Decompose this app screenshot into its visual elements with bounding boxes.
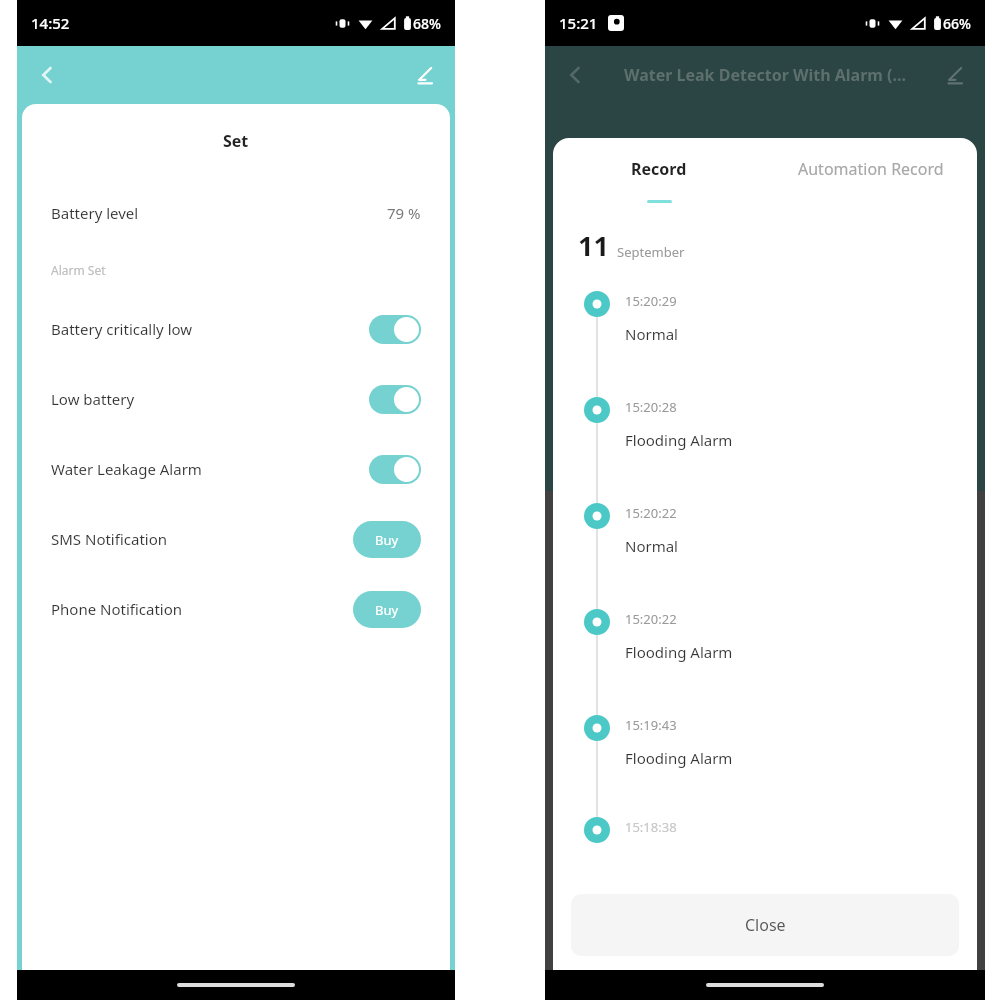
staticText: September (617, 243, 685, 261)
button[interactable]: Battery critically low (22, 294, 450, 364)
staticText: Normal (625, 536, 678, 556)
staticText: 66% (943, 14, 971, 33)
staticText: SMS Notification (51, 529, 168, 549)
staticText: 11 (578, 227, 609, 264)
staticText: 15:20:22 (625, 504, 677, 522)
button[interactable]: Edit (405, 55, 445, 95)
staticText: Alarm Set (51, 262, 106, 278)
staticText: 15:18:38 (625, 818, 677, 836)
button[interactable]: Back (27, 55, 67, 95)
staticText: Automation Record (798, 158, 944, 180)
staticText: 68% (413, 14, 441, 33)
staticText: Set (223, 130, 249, 152)
staticText: Phone Notification (51, 599, 183, 619)
staticText: 15:20:29 (625, 292, 677, 310)
button[interactable]: Battery level (22, 178, 450, 248)
staticText: Flooding Alarm (625, 430, 733, 450)
button[interactable]: Buy (353, 591, 421, 628)
button[interactable]: SMS Notification (22, 504, 450, 574)
button[interactable]: 15:20:22 (553, 604, 977, 710)
staticText: Buy (375, 601, 399, 619)
button[interactable]: Low battery (22, 364, 450, 434)
staticText: Water Leak Detector With Alarm (... (624, 64, 906, 86)
button[interactable]: 15:19:43 (553, 710, 977, 816)
staticText: Flooding Alarm (625, 748, 733, 768)
staticText: Water Leakage Alarm (51, 459, 202, 479)
button[interactable]: Phone Notification (22, 574, 450, 644)
staticText: Battery critically low (51, 319, 193, 339)
staticText: 15:20:28 (625, 398, 677, 416)
staticText: 14:52 (31, 13, 70, 33)
button[interactable]: Close (571, 894, 959, 956)
button[interactable] (369, 315, 421, 344)
button[interactable]: 15:20:28 (553, 392, 977, 498)
staticText: Battery level (51, 203, 139, 223)
staticText: Normal (625, 324, 678, 344)
button[interactable]: Edit (935, 55, 975, 95)
staticText: 15:19:43 (625, 716, 677, 734)
staticText: 79 % (387, 203, 421, 223)
staticText: 15:20:22 (625, 610, 677, 628)
button[interactable]: Buy (353, 521, 421, 558)
staticText: Low battery (51, 389, 135, 409)
button[interactable]: Automation Record (765, 138, 977, 200)
staticText: 15:21 (559, 13, 598, 33)
button[interactable] (369, 455, 421, 484)
button[interactable]: Record (553, 138, 765, 200)
button[interactable]: 15:20:29 (553, 286, 977, 392)
button[interactable] (369, 385, 421, 414)
staticText: Close (745, 914, 786, 936)
button[interactable]: 15:20:22 (553, 498, 977, 604)
button[interactable]: Water Leakage Alarm (22, 434, 450, 504)
button[interactable]: Back (555, 55, 595, 95)
staticText: Flooding Alarm (625, 642, 733, 662)
staticText: Buy (375, 531, 399, 549)
staticText: Record (631, 158, 687, 180)
